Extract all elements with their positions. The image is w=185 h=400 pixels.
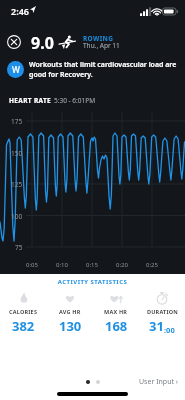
staticText: 31: [149, 317, 164, 335]
staticText: 0:20: [116, 261, 128, 269]
button[interactable]: DURATION: [139, 291, 185, 335]
staticText: 175: [11, 117, 23, 126]
button[interactable]: CALORIES: [0, 291, 47, 335]
staticText: 5:30 - 6:01PM: [54, 96, 96, 105]
staticText: 150: [11, 149, 23, 158]
staticText: 125: [11, 180, 23, 189]
staticText: 9.0: [31, 32, 54, 54]
button[interactable]: User Input ›: [139, 377, 178, 387]
staticText: 75: [15, 243, 23, 252]
staticText: AVG HR: [59, 308, 81, 315]
staticText: ACTIVITY STATISTICS: [0, 278, 185, 286]
staticText: 0:25: [146, 261, 158, 269]
button[interactable]: Close: [6, 34, 22, 50]
staticText: 100: [11, 212, 23, 221]
button[interactable]: AVG HR: [47, 291, 93, 335]
staticText: 2:46: [11, 5, 29, 17]
staticText: MAX HR: [104, 308, 128, 315]
staticText: 0:15: [86, 261, 98, 269]
staticText: 0:05: [26, 261, 38, 269]
staticText: 168: [105, 317, 128, 335]
staticText: 130: [59, 317, 82, 335]
staticText: Workouts that limit cardiovascular load …: [29, 60, 181, 80]
staticText: Thu., Apr 11: [83, 41, 120, 50]
staticText: 0:10: [56, 261, 68, 269]
button[interactable]: MAX HR: [93, 291, 139, 335]
staticText: W: [12, 64, 20, 76]
staticText: CALORIES: [9, 308, 38, 315]
staticText: HEART RATE: [9, 96, 54, 105]
staticText: DURATION: [147, 308, 178, 315]
staticText: :00: [164, 325, 175, 335]
staticText: ROWING: [83, 34, 114, 43]
staticText: 382: [12, 317, 35, 335]
